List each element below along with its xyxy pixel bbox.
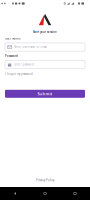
staticText: Password [5, 54, 18, 58]
staticText: Enter password [14, 63, 34, 66]
staticText: User Name [5, 37, 21, 40]
staticText: Enter username or email [14, 45, 47, 49]
button[interactable]: I forgot my password [5, 72, 33, 76]
staticText: I forgot my password [5, 72, 33, 76]
staticText: Privacy Policy [36, 178, 54, 182]
button[interactable]: Privacy Policy [36, 178, 54, 187]
staticText: Submit [37, 91, 52, 96]
button[interactable]: Recent apps [60, 187, 90, 200]
staticText: Start your session [33, 30, 57, 34]
button[interactable]: Submit [5, 90, 85, 98]
button[interactable]: Home [30, 187, 60, 200]
button[interactable]: Back [0, 187, 30, 200]
